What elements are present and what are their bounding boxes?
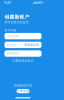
staticText: 9:41 <box>4 0 11 5</box>
staticText: 注册即同意协议 <box>12 59 33 62</box>
staticText: 验证码 <box>7 43 16 47</box>
staticText: 其他登录方式 <box>14 84 32 87</box>
button[interactable]: 手机号码 <box>4 33 41 39</box>
button[interactable]: 设置密码 <box>4 50 41 57</box>
staticText: 创建新账户 <box>4 14 29 20</box>
staticText: 设置密码 <box>7 51 19 55</box>
staticText: 立即登录 <box>17 89 29 93</box>
staticText: 账号信息 <box>5 29 17 32</box>
button[interactable]: 验证码 <box>4 42 41 48</box>
staticText: 填写信息开始使用 <box>4 20 28 24</box>
button[interactable]: 立即登录 <box>16 89 29 93</box>
staticText: 手机号码 <box>7 34 19 38</box>
staticText: 获取验证码 <box>24 43 39 47</box>
